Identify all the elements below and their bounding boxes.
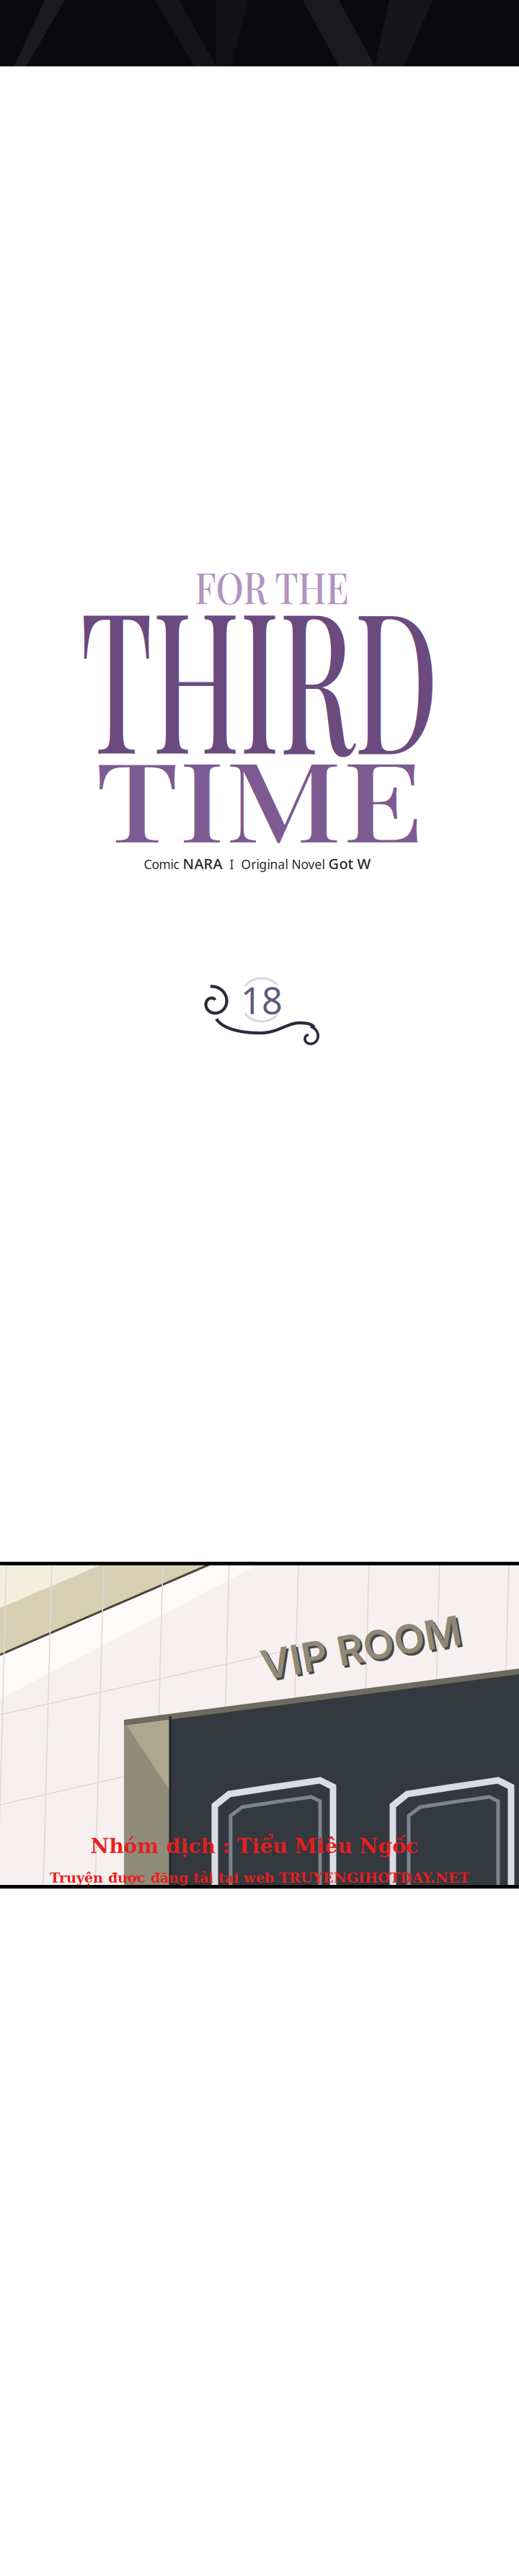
staticText: TIME	[95, 709, 424, 884]
staticText: 18	[241, 976, 283, 1024]
staticText: THIRD	[80, 597, 439, 749]
staticText: Comic NARA I Original Novel Got W	[144, 854, 371, 873]
staticText: FOR THE	[195, 561, 349, 610]
staticText: VIP ROOM	[262, 1625, 465, 1674]
staticText: Truyện được đăng tải tại web TRUYENGIHOT…	[50, 1870, 469, 1886]
staticText: VIP ROOM	[259, 1623, 463, 1672]
staticText: Nhóm dịch : Tiểu Miêu Ngốc	[90, 1834, 418, 1858]
